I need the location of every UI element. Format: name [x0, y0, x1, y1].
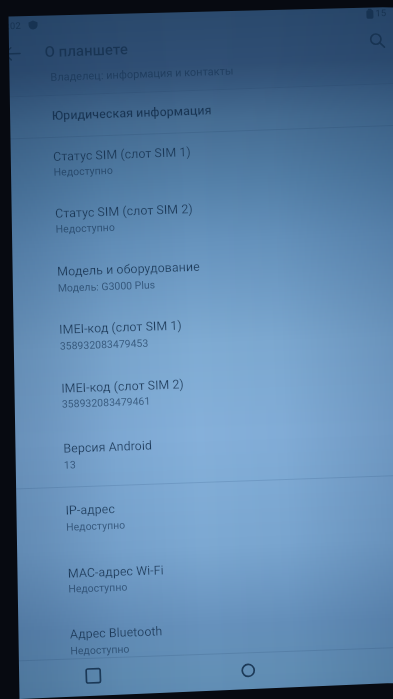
staticText: Адрес Bluetooth [70, 623, 163, 642]
staticText: Владелец: информация и контакты [50, 64, 234, 84]
button[interactable]: Версия Android [0, 418, 393, 467]
button[interactable]: Владелец: информация и контакты [0, 47, 393, 97]
staticText: 13 [64, 458, 76, 471]
staticText: IP-адрес [65, 501, 116, 518]
staticText: Недоступно [53, 164, 114, 178]
staticText: Недоступно [55, 221, 116, 235]
staticText: 06:02 [0, 20, 22, 32]
staticText: 358932083479453 [60, 337, 149, 352]
staticText: Недоступно [66, 519, 126, 533]
staticText: Статус SIM (слот SIM 2) [55, 201, 193, 221]
staticText: 358932083479461 [62, 395, 151, 410]
button[interactable]: IP-адрес [0, 480, 393, 529]
button[interactable]: MAC-адрес Wi-Fi [0, 543, 393, 592]
staticText: Юридическая информация [51, 102, 212, 123]
staticText: Версия Android [63, 438, 153, 456]
button[interactable]: Модель и оборудование [0, 241, 393, 291]
staticText: 15 [375, 7, 387, 19]
staticText: IMEI-код (слот SIM 1) [59, 317, 182, 337]
button[interactable]: Статус SIM (слот SIM 2) [0, 183, 393, 233]
staticText: Недоступно [70, 642, 131, 657]
button[interactable]: Home [231, 653, 266, 688]
button[interactable]: Статус SIM (слот SIM 1) [0, 126, 393, 176]
button[interactable]: Recent apps [76, 658, 111, 693]
staticText: IMEI-код (слот SIM 2) [61, 376, 184, 396]
button[interactable]: Юридическая информация [0, 85, 393, 135]
button[interactable]: Back [0, 33, 32, 74]
button[interactable]: Search [357, 20, 393, 61]
staticText: Статус SIM (слот SIM 1) [53, 144, 191, 164]
staticText: Модель и оборудование [57, 259, 200, 279]
button[interactable]: IMEI-код (слот SIM 2) [0, 358, 393, 407]
staticText: О планшете [44, 40, 129, 61]
button[interactable]: Адрес Bluetooth [0, 604, 393, 653]
staticText: Недоступно [68, 580, 128, 595]
staticText: MAC-адрес Wi-Fi [67, 562, 164, 581]
button[interactable]: IMEI-код (слот SIM 1) [0, 299, 393, 348]
staticText: Модель: G3000 Plus [58, 278, 156, 294]
